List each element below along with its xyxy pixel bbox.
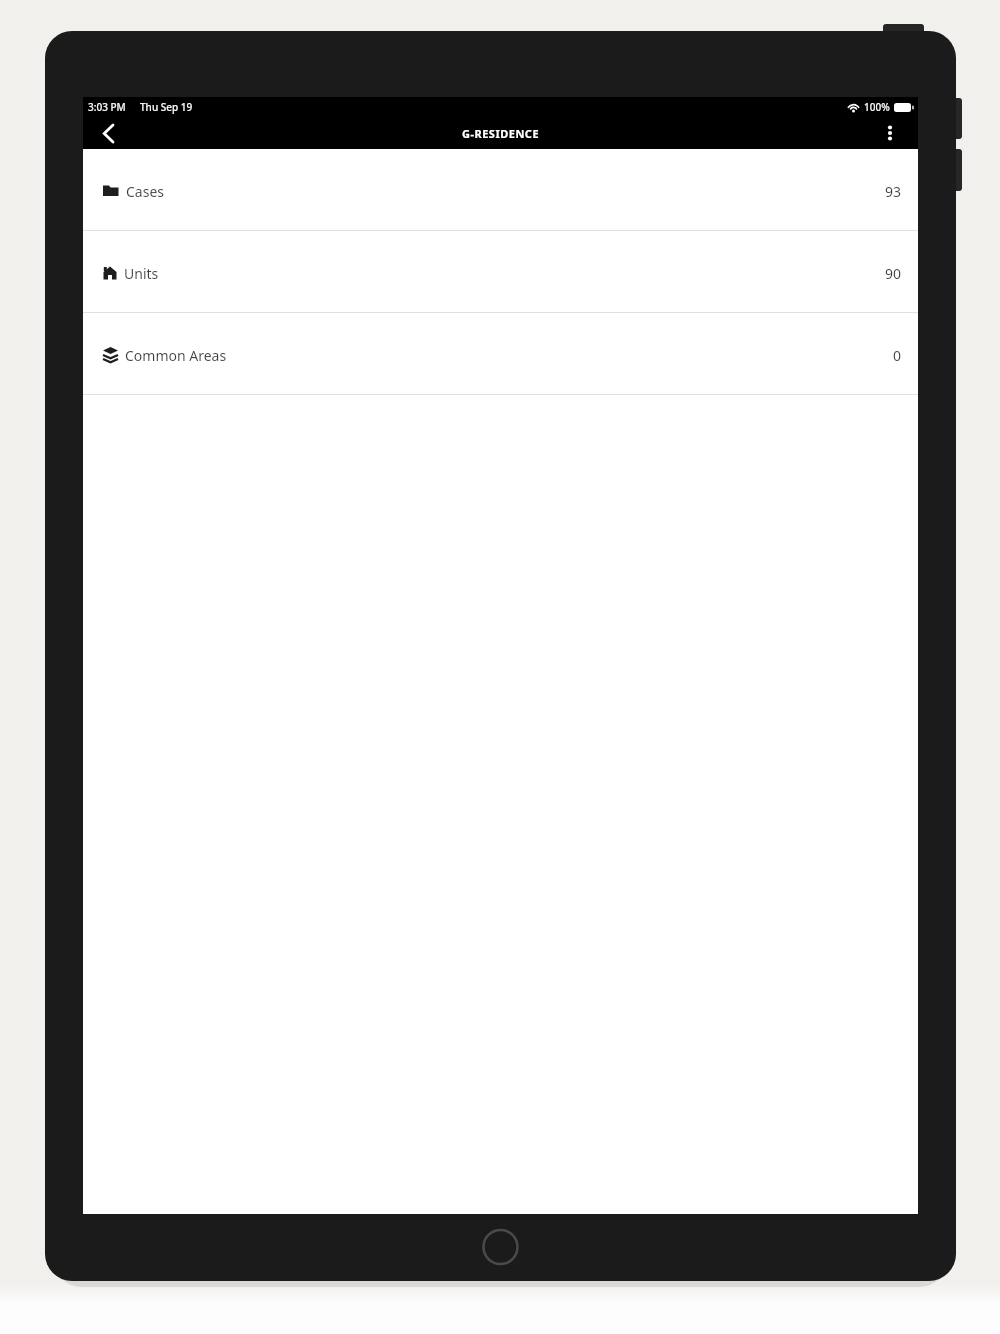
button[interactable]: Units — [83, 231, 918, 312]
staticText: 90 — [885, 264, 902, 283]
staticText: 0 — [893, 346, 902, 365]
button[interactable]: Common Areas — [83, 313, 918, 394]
staticText: 3:03 PM — [88, 100, 126, 114]
button[interactable] — [95, 120, 121, 146]
button[interactable]: Cases — [83, 149, 918, 230]
staticText: 100% — [864, 100, 890, 114]
staticText: Cases — [126, 182, 165, 201]
staticText: Common Areas — [125, 346, 227, 365]
staticText: Thu Sep 19 — [140, 100, 193, 114]
staticText: Units — [124, 264, 159, 283]
button[interactable] — [877, 120, 903, 146]
staticText: 93 — [885, 182, 902, 201]
staticText: G-RESIDENCE — [462, 126, 540, 141]
